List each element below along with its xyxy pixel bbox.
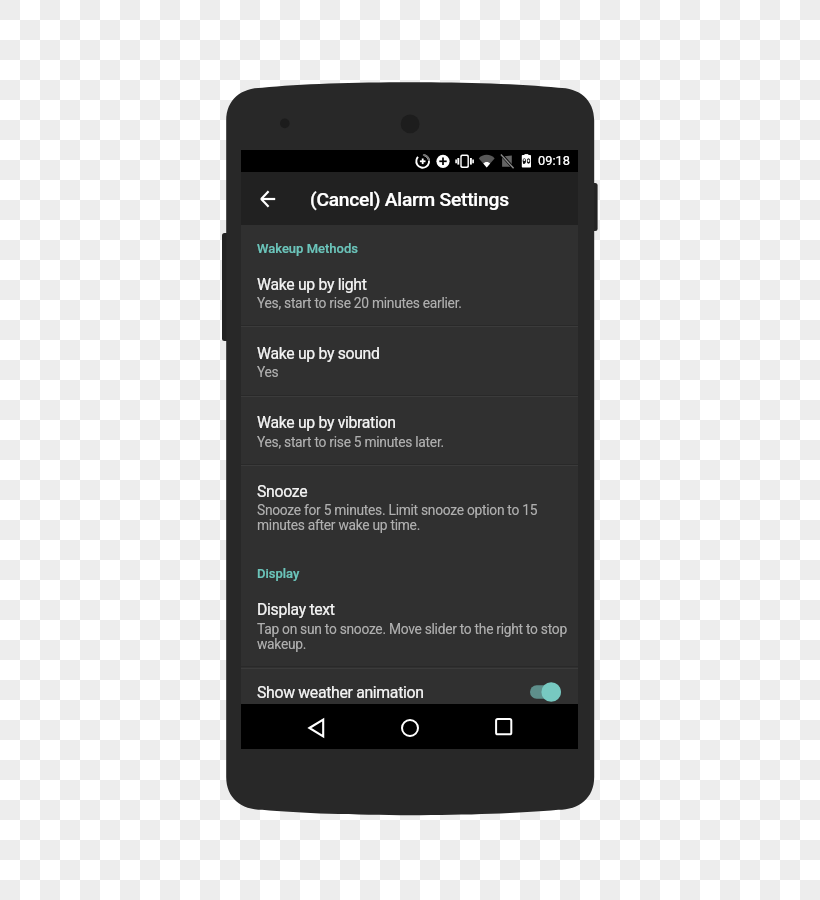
button[interactable]: Back xyxy=(301,712,333,744)
button[interactable]: Show weather animation xyxy=(241,667,578,704)
button[interactable]: Navigate up xyxy=(248,179,288,219)
staticText: Wake up by vibration xyxy=(257,413,396,432)
button[interactable]: Display text xyxy=(241,592,578,667)
staticText: Snooze xyxy=(257,482,308,501)
staticText: Wake up by light xyxy=(257,275,367,294)
staticText: Yes, start to rise 20 minutes earlier. xyxy=(257,295,567,311)
staticText: Wakeup Methods xyxy=(257,241,358,256)
button[interactable]: Wake up by light xyxy=(241,225,578,325)
button[interactable]: Snooze xyxy=(241,466,578,545)
staticText: 09:18 xyxy=(538,153,570,168)
staticText: Display xyxy=(257,566,300,581)
staticText: (Cancel) Alarm Settings xyxy=(310,188,509,211)
staticText: Snooze for 5 minutes. Limit snooze optio… xyxy=(257,502,567,533)
staticText: Tap on sun to snooze. Move slider to the… xyxy=(257,621,567,652)
staticText: Yes xyxy=(257,364,567,380)
staticText: Show weather animation xyxy=(257,683,424,702)
button[interactable]: Wake up by vibration xyxy=(241,395,578,464)
button[interactable]: Home xyxy=(394,712,426,744)
button[interactable]: Wake up by sound xyxy=(241,325,578,395)
staticText: Yes, start to rise 5 minutes later. xyxy=(257,434,567,450)
staticText: Display text xyxy=(257,600,335,619)
button[interactable]: Recent apps xyxy=(489,712,521,744)
staticText: Wake up by sound xyxy=(257,344,380,363)
